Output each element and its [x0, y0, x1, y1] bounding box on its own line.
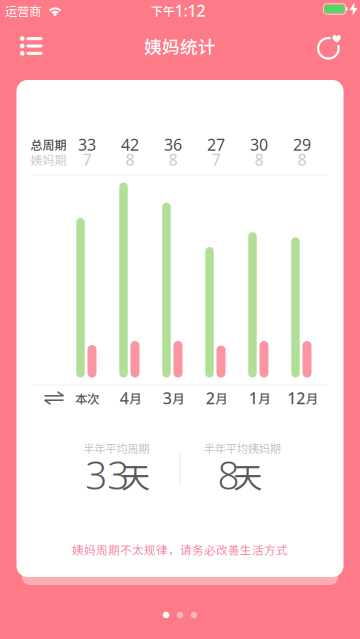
- staticText: 总周期: [30, 136, 66, 153]
- staticText: 天: [233, 454, 262, 497]
- staticText: 2: [206, 387, 215, 409]
- staticText: 半年平均姨妈期: [204, 440, 281, 456]
- button[interactable]: 记录列表: [10, 26, 53, 66]
- staticText: 30: [250, 134, 268, 155]
- staticText: 42: [121, 134, 139, 155]
- staticText: 8: [297, 149, 306, 170]
- staticText: 33: [78, 134, 96, 155]
- staticText: 月: [215, 389, 228, 407]
- staticText: 姨妈期: [30, 151, 66, 168]
- staticText: 半年平均周期: [83, 440, 149, 456]
- staticText: 运营商: [5, 1, 41, 19]
- staticText: 3: [163, 387, 172, 409]
- staticText: 27: [207, 134, 225, 155]
- staticText: 4: [120, 387, 129, 409]
- staticText: 7: [211, 149, 220, 170]
- staticText: 8: [254, 149, 263, 170]
- staticText: 8: [217, 449, 239, 500]
- staticText: 本次: [75, 389, 99, 407]
- staticText: 7: [82, 149, 91, 170]
- staticText: 1: [249, 387, 258, 409]
- staticText: 12: [287, 387, 305, 409]
- staticText: 月: [172, 389, 185, 407]
- staticText: 姨妈周期不太规律，请务必改善生活方式: [72, 541, 288, 558]
- staticText: 8: [125, 149, 134, 170]
- staticText: 下午: [151, 2, 175, 19]
- button[interactable]: 切换图表: [38, 386, 69, 409]
- staticText: 29: [293, 134, 311, 155]
- staticText: 33: [85, 449, 129, 500]
- staticText: 36: [164, 134, 182, 155]
- staticText: 1:12: [174, 0, 205, 21]
- staticText: 月: [129, 389, 142, 407]
- staticText: 月: [306, 389, 319, 407]
- staticText: 8: [168, 149, 177, 170]
- staticText: 姨妈统计: [144, 33, 216, 59]
- staticText: 月: [258, 389, 271, 407]
- staticText: 天: [121, 454, 150, 497]
- button[interactable]: 刷新: [306, 22, 352, 70]
